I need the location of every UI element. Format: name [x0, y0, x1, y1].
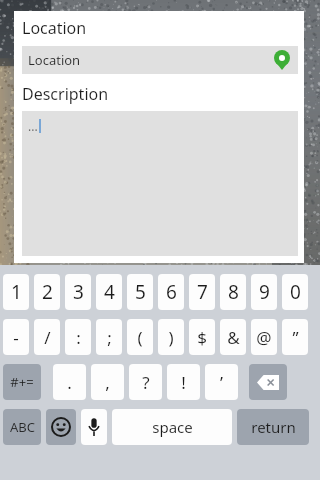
button[interactable]: ’: [205, 364, 238, 400]
staticText: ;: [107, 326, 112, 349]
button[interactable]: space: [112, 409, 232, 445]
button[interactable]: 6: [158, 274, 184, 310]
staticText: Location: [28, 51, 81, 69]
staticText: 8: [228, 279, 239, 305]
staticText: ABC: [10, 418, 35, 436]
button[interactable]: Location: [22, 46, 298, 74]
staticText: -: [13, 326, 19, 349]
staticText: ): [168, 326, 174, 349]
button[interactable]: return: [237, 409, 309, 445]
staticText: 9: [259, 279, 270, 305]
staticText: Location: [22, 17, 87, 39]
button[interactable]: 9: [251, 274, 277, 310]
button[interactable]: ABC: [3, 409, 41, 445]
staticText: ...: [28, 118, 38, 134]
button[interactable]: !: [167, 364, 200, 400]
staticText: 1: [11, 279, 22, 305]
button[interactable]: ): [158, 319, 184, 355]
button[interactable]: 8: [220, 274, 246, 310]
staticText: /: [44, 326, 51, 349]
staticText: $: [197, 326, 207, 349]
staticText: &: [227, 326, 240, 349]
button[interactable]: :: [65, 319, 91, 355]
staticText: 5: [135, 279, 146, 305]
button[interactable]: 7: [189, 274, 215, 310]
staticText: return: [251, 417, 296, 437]
staticText: 4: [104, 279, 115, 305]
staticText: 3: [73, 279, 84, 305]
button[interactable]: 4: [96, 274, 122, 310]
button[interactable]: ;: [96, 319, 122, 355]
staticText: ’: [220, 371, 223, 394]
button[interactable]: Voice input: [81, 409, 107, 445]
button[interactable]: 1: [3, 274, 29, 310]
button[interactable]: 0: [282, 274, 308, 310]
staticText: #+=: [10, 373, 34, 391]
button[interactable]: Emoji: [46, 409, 76, 445]
button[interactable]: &: [220, 319, 246, 355]
button[interactable]: Delete: [249, 364, 287, 400]
staticText: !: [181, 371, 186, 394]
button[interactable]: @: [251, 319, 277, 355]
staticText: Description: [22, 83, 109, 105]
button[interactable]: ,: [91, 364, 124, 400]
button[interactable]: 3: [65, 274, 91, 310]
button[interactable]: 2: [34, 274, 60, 310]
button[interactable]: 5: [127, 274, 153, 310]
button[interactable]: (: [127, 319, 153, 355]
staticText: space: [152, 417, 193, 437]
staticText: .: [67, 371, 72, 394]
staticText: (: [137, 326, 143, 349]
button[interactable]: /: [34, 319, 60, 355]
staticText: ,: [105, 371, 110, 394]
button[interactable]: -: [3, 319, 29, 355]
staticText: @: [256, 326, 272, 349]
button[interactable]: ?: [129, 364, 162, 400]
button[interactable]: ”: [282, 319, 308, 355]
staticText: :: [76, 326, 81, 349]
staticText: ”: [292, 326, 299, 349]
staticText: 7: [197, 279, 208, 305]
staticText: 6: [166, 279, 177, 305]
staticText: 0: [290, 279, 301, 305]
staticText: 2: [42, 279, 53, 305]
button[interactable]: Pick location on map: [274, 49, 290, 71]
staticText: ?: [142, 371, 150, 394]
button[interactable]: #+=: [3, 364, 41, 400]
button[interactable]: .: [53, 364, 86, 400]
button[interactable]: $: [189, 319, 215, 355]
